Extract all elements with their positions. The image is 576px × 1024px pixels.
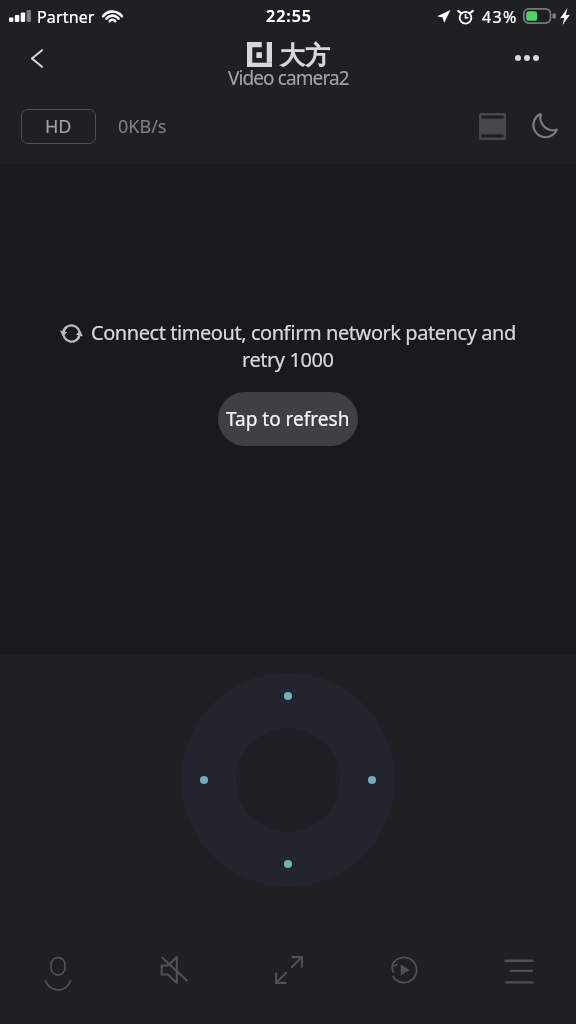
button[interactable]: Playback: [346, 920, 461, 1020]
staticText: 22:55: [266, 5, 313, 27]
staticText: Video camera2: [228, 65, 349, 91]
staticText: Tap to refresh: [226, 406, 350, 432]
button[interactable]: Fullscreen: [231, 920, 346, 1020]
staticText: Partner: [37, 6, 95, 28]
button[interactable]: Back: [13, 34, 61, 82]
staticText: HD: [45, 114, 72, 139]
staticText: Connect timeout, confirm network patency…: [91, 319, 516, 346]
button[interactable]: Screenshot: [473, 104, 517, 148]
staticText: 0KB/s: [118, 114, 167, 139]
button[interactable]: Microphone: [0, 920, 116, 1020]
staticText: retry 1000: [242, 346, 334, 373]
button[interactable]: More options: [503, 34, 551, 82]
button[interactable]: Mute: [116, 920, 231, 1020]
staticText: 大方: [280, 40, 330, 71]
staticText: 43%: [482, 6, 518, 28]
button[interactable]: Night mode: [524, 104, 568, 148]
button[interactable]: Direction pad: [181, 673, 395, 887]
button[interactable]: Menu: [461, 920, 576, 1020]
button[interactable]: HD: [21, 109, 96, 144]
button[interactable]: Tap to refresh: [218, 392, 358, 446]
